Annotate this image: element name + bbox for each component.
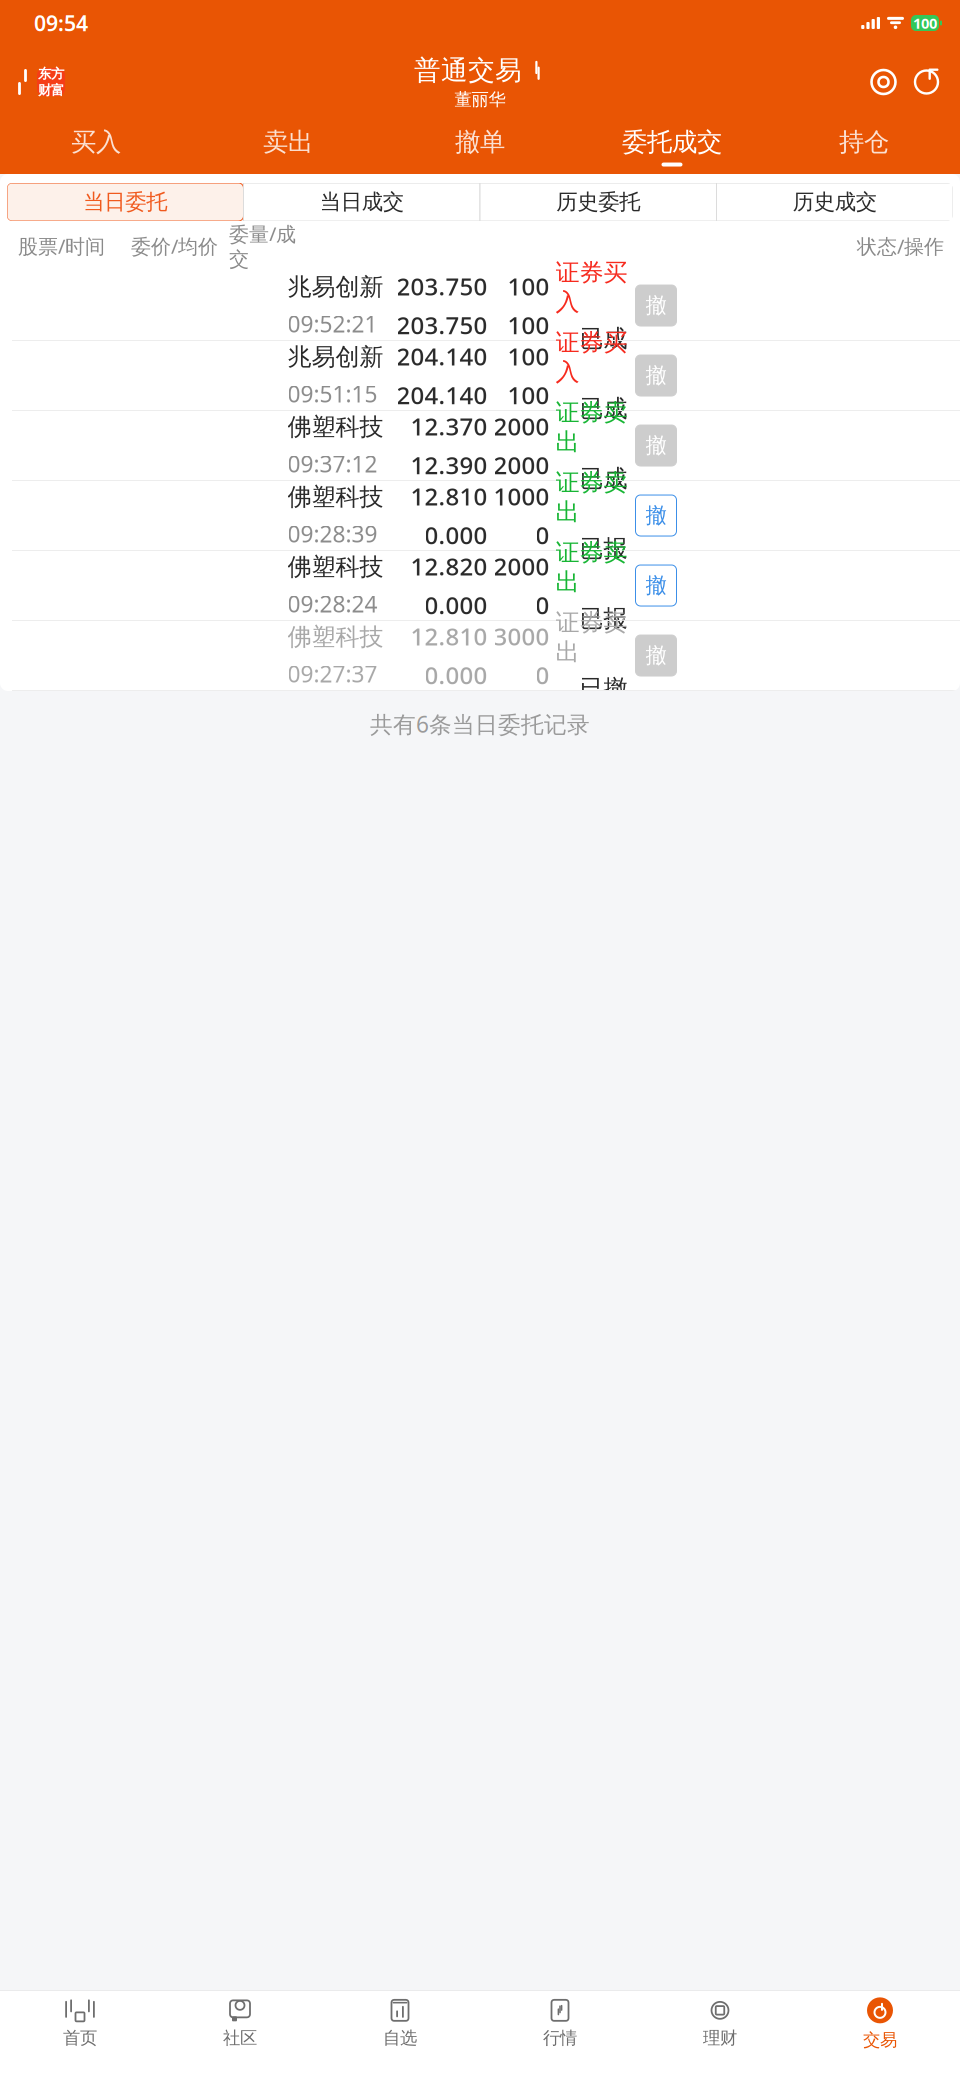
staticText: 首页: [63, 2027, 97, 2049]
staticText: 撤单: [455, 126, 505, 157]
button[interactable]: 刷新: [905, 60, 948, 103]
staticText: 撤: [645, 362, 666, 389]
staticText: 0.000: [424, 659, 487, 691]
staticText: 203.750: [396, 309, 487, 341]
button[interactable]: 撤单: [635, 425, 676, 466]
button[interactable]: 交易: [800, 1994, 960, 2053]
staticText: 证券卖出: [555, 398, 627, 457]
staticText: 行情: [543, 2027, 577, 2049]
staticText: 已撤: [579, 674, 627, 703]
staticText: 理财: [703, 2027, 737, 2049]
staticText: 撤: [645, 292, 666, 319]
staticText: 100: [507, 340, 549, 372]
staticText: 12.370: [410, 410, 487, 442]
button[interactable]: 行情: [480, 1996, 640, 2051]
staticText: 1000: [493, 480, 549, 512]
staticText: 东方: [38, 66, 64, 82]
staticText: 佛塑科技: [287, 412, 383, 442]
staticText: 证券买入: [555, 258, 627, 317]
staticText: 100: [913, 13, 937, 33]
staticText: 09:51:15: [287, 379, 377, 409]
button[interactable]: 设置: [862, 60, 905, 103]
staticText: 0.000: [424, 519, 487, 551]
staticText: 撤: [645, 642, 666, 669]
staticText: 已成: [579, 394, 627, 423]
button[interactable]: 卖出: [192, 118, 384, 173]
staticText: 已成: [579, 464, 627, 493]
staticText: 0.000: [424, 589, 487, 621]
staticText: 持仓: [839, 126, 889, 157]
staticText: 撤: [645, 502, 666, 529]
staticText: 09:52:21: [287, 309, 377, 339]
staticText: 100: [507, 309, 549, 341]
staticText: 状态/操作: [857, 233, 944, 259]
staticText: 0: [535, 659, 549, 691]
staticText: 兆易创新: [287, 272, 383, 302]
button[interactable]: 当日成交: [243, 183, 480, 221]
button[interactable]: 历史成交: [716, 183, 953, 221]
button[interactable]: 返回: [0, 62, 65, 102]
staticText: 交易: [863, 2029, 897, 2051]
button[interactable]: 历史委托: [480, 183, 716, 221]
staticText: 委托成交: [622, 126, 722, 157]
staticText: 普通交易: [414, 54, 522, 87]
staticText: 已成: [579, 324, 627, 353]
button[interactable]: 持仓: [768, 118, 960, 173]
staticText: 当日成交: [320, 189, 404, 215]
staticText: 当日委托: [83, 189, 167, 215]
staticText: 已报: [579, 604, 627, 633]
staticText: 财富: [38, 82, 64, 98]
button[interactable]: 撤单: [384, 118, 576, 173]
button[interactable]: 委托成交: [576, 118, 768, 173]
staticText: 佛塑科技: [287, 552, 383, 582]
staticText: 09:28:39: [287, 519, 377, 549]
button[interactable]: 撤单: [635, 285, 676, 326]
staticText: 股票/时间: [18, 233, 105, 259]
button[interactable]: 当日委托: [7, 183, 243, 221]
staticText: 100: [507, 270, 549, 302]
button[interactable]: 撤单: [635, 495, 676, 536]
staticText: 2000: [493, 410, 549, 442]
staticText: 09:37:12: [287, 449, 377, 479]
staticText: 09:27:37: [287, 659, 377, 689]
staticText: 委量/成交: [229, 220, 296, 271]
staticText: 3000: [493, 620, 549, 652]
staticText: 撤: [645, 432, 666, 459]
staticText: 203.750: [396, 270, 487, 302]
staticText: 社区: [223, 2027, 257, 2049]
button[interactable]: 买入: [0, 118, 192, 173]
staticText: 0: [535, 589, 549, 621]
staticText: 兆易创新: [287, 342, 383, 372]
staticText: 12.810: [410, 620, 487, 652]
button[interactable]: 自选: [320, 1996, 480, 2051]
staticText: 12.810: [410, 480, 487, 512]
staticText: 自选: [383, 2027, 417, 2049]
staticText: 2000: [493, 550, 549, 582]
staticText: 委价/均价: [131, 233, 218, 259]
staticText: 0: [535, 519, 549, 551]
staticText: 100: [507, 379, 549, 411]
staticText: 董丽华: [454, 89, 505, 110]
staticText: 证券卖出: [555, 608, 627, 667]
staticText: 买入: [71, 126, 121, 157]
staticText: 已报: [579, 534, 627, 563]
staticText: 佛塑科技: [287, 622, 383, 652]
button[interactable]: 撤单: [635, 355, 676, 396]
staticText: 12.390: [410, 449, 487, 481]
button[interactable]: 社区: [160, 1996, 320, 2051]
staticText: 证券卖出: [555, 538, 627, 597]
staticText: 撤: [645, 572, 666, 599]
staticText: 证券买入: [555, 328, 627, 387]
staticText: 历史成交: [793, 189, 877, 215]
button[interactable]: 理财: [640, 1996, 800, 2051]
staticText: 09:54: [34, 9, 88, 37]
button[interactable]: 撤单: [635, 565, 676, 606]
staticText: 2000: [493, 449, 549, 481]
staticText: 共有6条当日委托记录: [370, 709, 590, 739]
staticText: 证券卖出: [555, 468, 627, 527]
staticText: 204.140: [396, 340, 487, 372]
button[interactable]: 首页: [0, 1996, 160, 2051]
button[interactable]: 撤单: [635, 635, 676, 676]
staticText: 12.820: [410, 550, 487, 582]
staticText: 历史委托: [556, 189, 640, 215]
